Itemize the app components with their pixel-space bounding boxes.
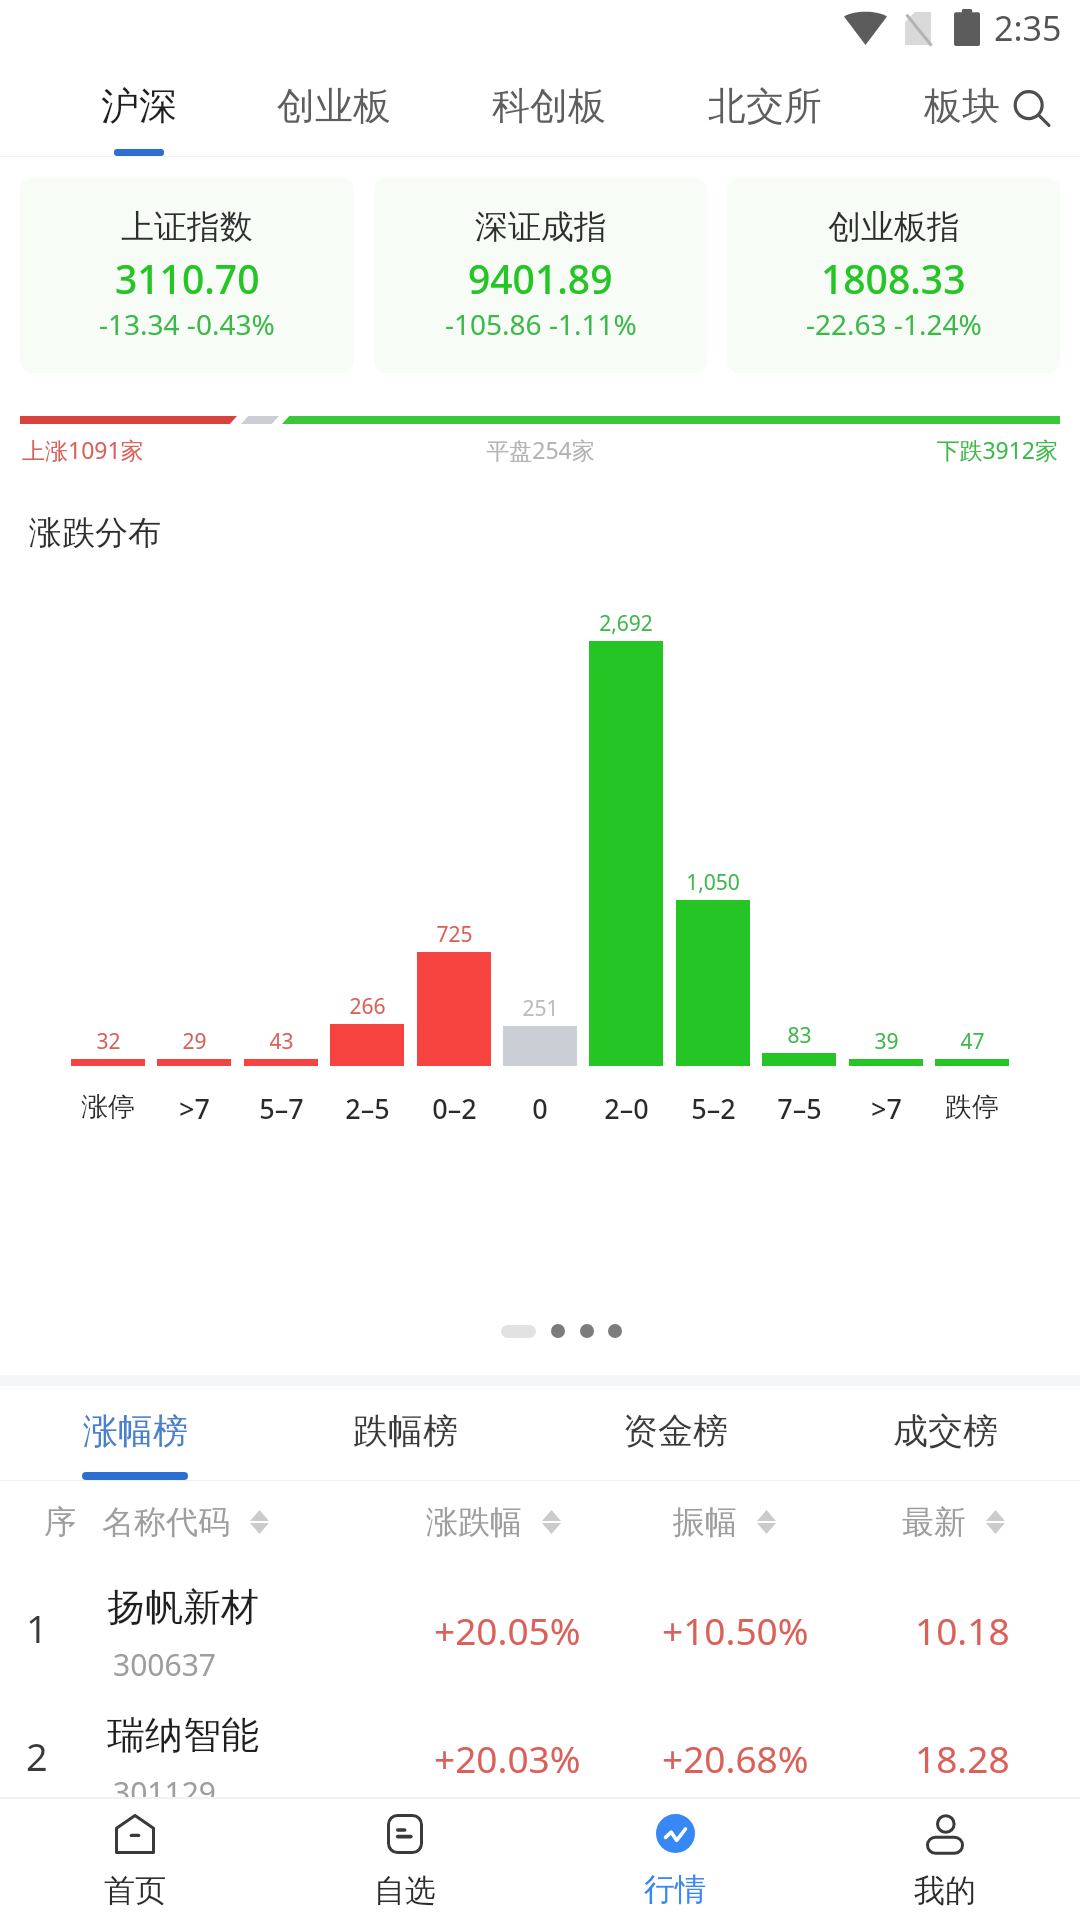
staticText: 1808.33 <box>821 252 966 305</box>
staticText: 2–0 <box>604 1090 649 1127</box>
staticText: 7–5 <box>777 1090 822 1127</box>
staticText: 0–2 <box>432 1090 477 1127</box>
button[interactable]: 涨跌幅 <box>426 1502 561 1542</box>
staticText: 18.28 <box>915 1733 1010 1783</box>
staticText: 5–7 <box>259 1090 304 1127</box>
staticText: 成交榜 <box>893 1409 998 1453</box>
button[interactable]: 板块 <box>864 82 1060 144</box>
button[interactable]: 深证成指 <box>374 178 707 373</box>
button[interactable]: 创业板指 <box>727 178 1060 373</box>
button[interactable]: 名称代码 <box>102 1502 269 1542</box>
button[interactable]: 振幅 <box>673 1502 776 1542</box>
staticText: 序 <box>44 1502 76 1542</box>
staticText: 资金榜 <box>623 1409 728 1453</box>
button[interactable]: 资金榜 <box>540 1386 810 1481</box>
staticText: 上证指数 <box>121 206 253 248</box>
staticText: 2 <box>26 1730 48 1782</box>
staticText: 10.18 <box>915 1605 1010 1655</box>
button[interactable]: 创业板 <box>236 82 432 144</box>
staticText: 自选 <box>374 1871 436 1910</box>
staticText: 2:35 <box>994 5 1062 51</box>
staticText: 跌幅榜 <box>353 1409 458 1453</box>
staticText: 1,050 <box>686 868 740 897</box>
button[interactable]: Page 4 <box>608 1324 622 1338</box>
button[interactable]: 涨幅榜 <box>0 1386 270 1481</box>
staticText: 名称代码 <box>102 1502 230 1542</box>
staticText: 涨幅榜 <box>83 1409 188 1453</box>
staticText: >7 <box>179 1090 210 1127</box>
staticText: 5–2 <box>691 1090 736 1127</box>
staticText: 创业板指 <box>828 206 960 248</box>
staticText: 北交所 <box>708 82 822 130</box>
button[interactable]: 行情 <box>540 1799 810 1920</box>
staticText: 83 <box>787 1021 812 1050</box>
staticText: 涨跌幅 <box>426 1502 522 1542</box>
staticText: 266 <box>349 992 386 1021</box>
staticText: +10.50% <box>662 1605 809 1655</box>
button[interactable]: 跌幅榜 <box>270 1386 540 1481</box>
staticText: 首页 <box>104 1871 166 1910</box>
staticText: +20.03% <box>434 1733 581 1783</box>
staticText: 涨停 <box>81 1090 135 1124</box>
staticText: 涨跌分布 <box>29 512 161 554</box>
staticText: +20.05% <box>434 1605 581 1655</box>
button[interactable]: 最新 <box>902 1502 1005 1542</box>
staticText: 科创板 <box>492 82 606 130</box>
button[interactable]: 我的 <box>810 1799 1080 1920</box>
staticText: 9401.89 <box>468 252 613 305</box>
button[interactable]: 1 <box>0 1575 1080 1703</box>
staticText: 平盘254家 <box>368 434 713 465</box>
staticText: 跌停 <box>945 1090 999 1124</box>
button[interactable]: 科创板 <box>451 82 647 144</box>
staticText: 1 <box>26 1602 48 1654</box>
staticText: 深证成指 <box>475 206 607 248</box>
staticText: -13.34 -0.43% <box>99 305 275 343</box>
staticText: 沪深 <box>101 82 177 130</box>
staticText: 0 <box>532 1090 548 1127</box>
button[interactable]: 上证指数 <box>20 178 354 373</box>
staticText: 扬帆新材 <box>107 1583 259 1631</box>
staticText: 300637 <box>113 1644 216 1685</box>
staticText: 行情 <box>644 1870 706 1909</box>
staticText: >7 <box>871 1090 902 1127</box>
staticText: +20.68% <box>662 1733 809 1783</box>
staticText: 43 <box>269 1027 294 1056</box>
staticText: 2,692 <box>599 609 653 638</box>
staticText: 3110.70 <box>115 252 260 305</box>
staticText: 301129 <box>113 1772 216 1813</box>
button[interactable]: Search <box>1002 78 1058 134</box>
staticText: -105.86 -1.11% <box>445 305 637 343</box>
button[interactable]: 首页 <box>0 1799 270 1920</box>
staticText: 创业板 <box>277 82 391 130</box>
staticText: 29 <box>182 1027 207 1056</box>
staticText: 39 <box>874 1027 899 1056</box>
staticText: -22.63 -1.24% <box>806 305 982 343</box>
staticText: 47 <box>960 1027 985 1056</box>
staticText: 我的 <box>914 1871 976 1910</box>
button[interactable]: 成交榜 <box>810 1386 1080 1481</box>
button[interactable]: 自选 <box>270 1799 540 1920</box>
button[interactable]: 沪深 <box>41 82 237 144</box>
staticText: 最新 <box>902 1502 966 1542</box>
button[interactable]: Page 1 <box>501 1325 536 1338</box>
staticText: 板块 <box>924 82 1000 130</box>
button[interactable]: 北交所 <box>667 82 863 144</box>
button[interactable]: Page 3 <box>580 1324 594 1338</box>
button[interactable]: Page 2 <box>551 1324 565 1338</box>
staticText: 下跌3912家 <box>713 434 1058 465</box>
staticText: 振幅 <box>673 1502 737 1542</box>
staticText: 瑞纳智能 <box>107 1711 259 1759</box>
staticText: 上涨1091家 <box>22 434 368 465</box>
staticText: 725 <box>436 920 473 949</box>
button[interactable]: 2 <box>0 1703 1080 1831</box>
staticText: 32 <box>96 1027 121 1056</box>
staticText: 2–5 <box>345 1090 390 1127</box>
staticText: 251 <box>522 994 559 1023</box>
